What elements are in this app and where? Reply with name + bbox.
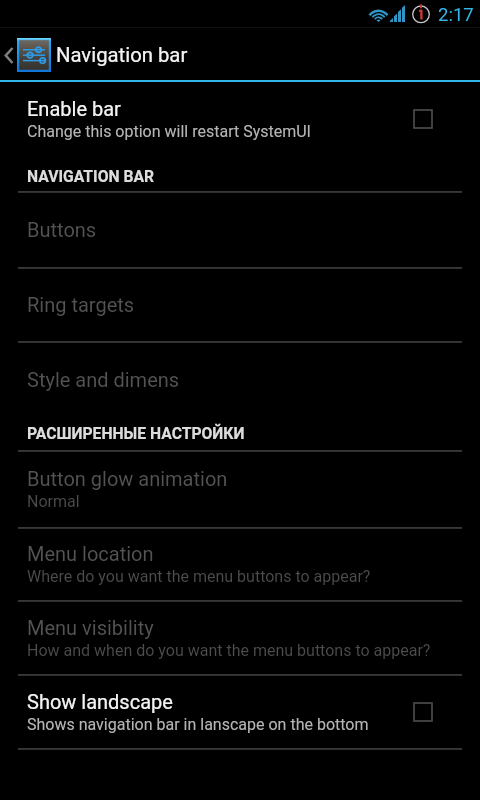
button[interactable]: Style and dimens (0, 342, 480, 416)
button[interactable]: Button glow animation (0, 451, 480, 527)
button[interactable]: Buttons (0, 192, 480, 267)
staticText: Change this option will restart SystemUI (27, 122, 311, 141)
staticText: Shows navigation bar in lanscape on the … (27, 715, 369, 734)
staticText: Show landscape (27, 690, 173, 713)
staticText: How and when do you want the menu button… (27, 641, 431, 660)
button[interactable]: Menu location (0, 528, 480, 600)
button[interactable]: Enable bar (0, 82, 480, 155)
staticText: 2:17 (438, 4, 474, 26)
button[interactable]: Navigate up (0, 27, 52, 82)
staticText: РАСШИРЕННЫЕ НАСТРОЙКИ (27, 424, 245, 442)
staticText: Button glow animation (27, 467, 228, 490)
staticText: NAVIGATION BAR (27, 167, 155, 185)
staticText: Style and dimens (27, 368, 180, 391)
button[interactable]: Ring targets (0, 268, 480, 341)
staticText: Ring targets (27, 293, 135, 316)
staticText: Enable bar (27, 97, 121, 120)
staticText: Where do you want the menu buttons to ap… (27, 567, 371, 586)
staticText: Menu visibility (27, 616, 154, 639)
staticText: Navigation bar (56, 43, 188, 67)
staticText: Menu location (27, 542, 154, 565)
staticText: Normal (27, 492, 80, 511)
staticText: Buttons (27, 218, 97, 241)
button[interactable]: Menu visibility (0, 601, 480, 674)
button[interactable]: Show landscape (0, 675, 480, 748)
